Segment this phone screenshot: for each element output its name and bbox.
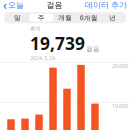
staticText: 개월 (58, 14, 72, 22)
staticText: 총계 (30, 25, 40, 32)
button[interactable]: 일 (5, 14, 29, 22)
staticText: 주 (38, 14, 45, 22)
staticText: 오늘 (8, 0, 24, 10)
button[interactable]: ‹ (0, 0, 24, 15)
button[interactable]: 주 (29, 14, 53, 22)
staticText: 일 (14, 14, 21, 22)
staticText: 6개월 (80, 13, 98, 22)
staticText: 걸음 (86, 45, 100, 53)
button[interactable]: 데이터 추가 (85, 0, 130, 12)
button[interactable]: 년 (101, 14, 124, 22)
staticText: 20,000 (112, 62, 128, 69)
staticText: 10,000 (112, 102, 128, 109)
staticText: 데이터 추가 (85, 0, 127, 10)
button[interactable]: 6개월 (77, 14, 101, 22)
staticText: 걸음 (46, 0, 62, 10)
staticText: 년 (109, 14, 116, 22)
staticText: 19,739 (30, 32, 85, 55)
staticText: 2024. 3. 24. (30, 55, 56, 62)
button[interactable]: 개월 (53, 14, 77, 22)
staticText: ‹ (3, 0, 7, 13)
